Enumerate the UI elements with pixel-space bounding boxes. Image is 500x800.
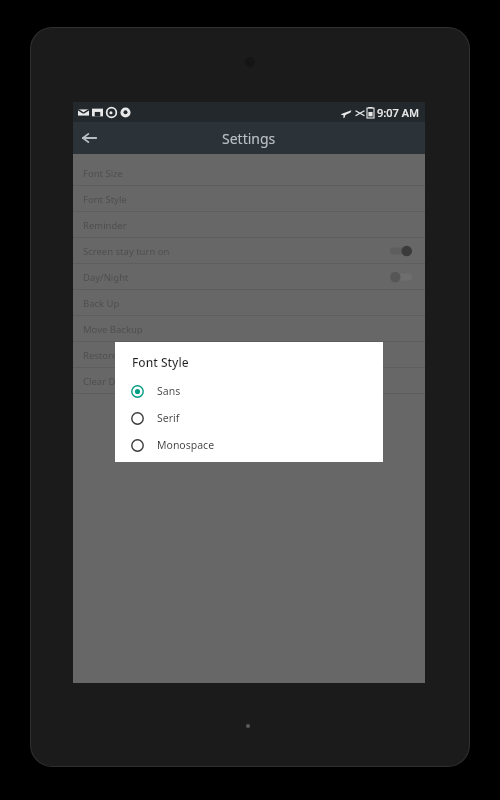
staticText: Back Up [83, 297, 120, 310]
staticText: Monospace [157, 438, 215, 452]
staticText: Font Style [132, 354, 189, 370]
button[interactable]: Serif [115, 407, 383, 429]
staticText: Font Size [83, 167, 123, 180]
staticText: Clear Data [83, 375, 130, 388]
staticText: Serif [157, 411, 180, 425]
staticText: Day/Night [83, 271, 129, 284]
staticText: Move Backup [83, 323, 143, 336]
staticText: 9:07 AM [377, 105, 420, 120]
button[interactable]: Restore [73, 342, 425, 368]
staticText: Sans [157, 384, 181, 398]
button[interactable]: Screen stay turn on [73, 238, 425, 264]
button[interactable]: Day/Night [73, 264, 425, 290]
staticText: Font Style [83, 193, 127, 206]
button[interactable]: Back [73, 122, 105, 154]
staticText: Settings [222, 129, 276, 148]
staticText: Screen stay turn on [83, 245, 170, 258]
staticText: Reminder [83, 219, 127, 232]
staticText: Restore [83, 349, 118, 362]
button[interactable]: Monospace [115, 434, 383, 456]
button[interactable]: Sans [115, 380, 383, 402]
button[interactable]: Clear Data [73, 368, 425, 394]
